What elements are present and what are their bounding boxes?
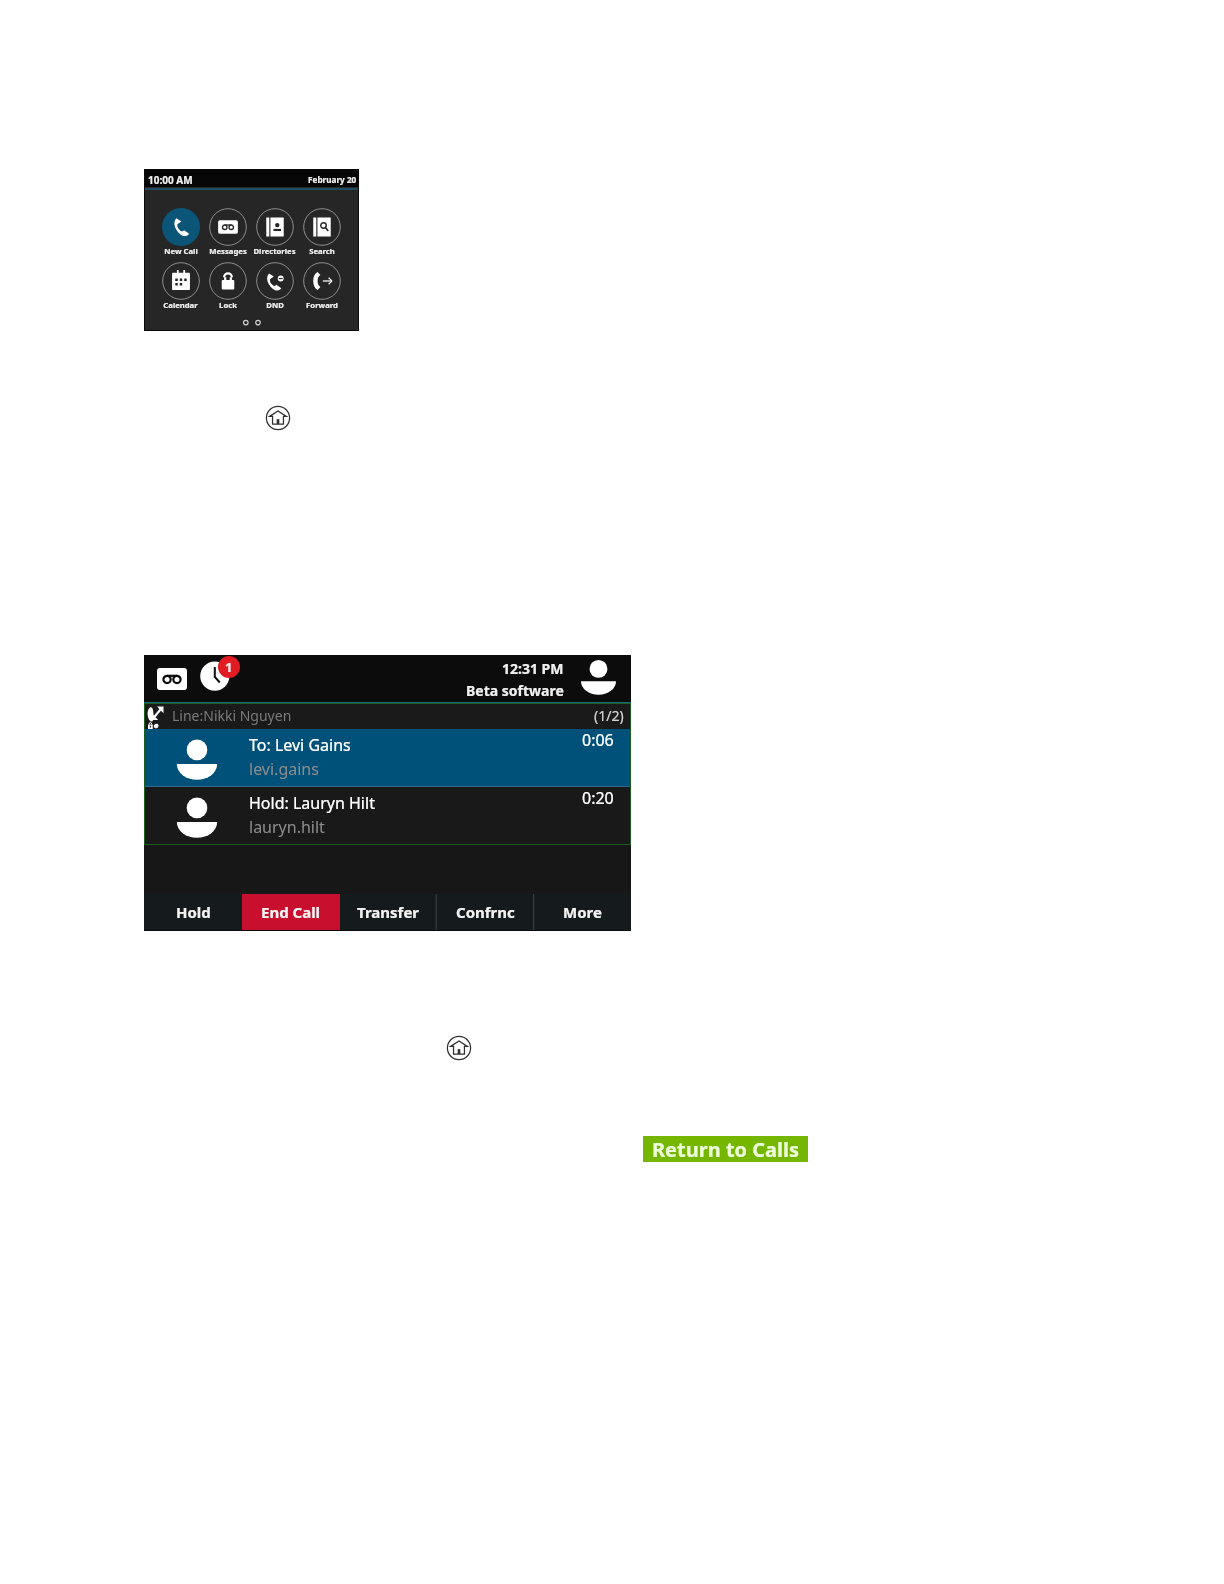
staticText: lauryn.hilt	[249, 816, 325, 838]
button[interactable]: More	[534, 894, 631, 931]
staticText: levi.gains	[249, 758, 319, 780]
staticText: Calendar	[163, 300, 198, 310]
button[interactable]: Forward	[298, 262, 345, 310]
staticText: (1/2)	[594, 706, 624, 725]
button[interactable]: New Call	[157, 208, 204, 256]
staticText: Transfer	[357, 902, 420, 922]
staticText: More	[563, 902, 602, 922]
button[interactable]: Messages	[204, 208, 251, 256]
button[interactable]: Lock	[204, 262, 251, 310]
button[interactable]: Recent calls	[200, 661, 230, 691]
staticText: To: Levi Gains	[249, 734, 351, 756]
button[interactable]: Directories	[251, 208, 298, 256]
staticText: Return to Calls	[652, 1136, 800, 1162]
button[interactable]: Return to Calls	[643, 1136, 808, 1162]
staticText: New Call	[164, 246, 198, 256]
staticText: 12:31 PM	[502, 659, 564, 678]
staticText: Hold	[176, 902, 211, 922]
button[interactable]: Confrnc	[437, 894, 534, 931]
staticText: 10:00 AM	[148, 173, 193, 187]
button[interactable]: Home	[446, 1035, 472, 1061]
staticText: Messages	[209, 246, 247, 256]
staticText: DND	[266, 300, 284, 310]
button[interactable]: Search	[298, 208, 345, 256]
button[interactable]: Hold	[144, 894, 242, 931]
button[interactable]: Voicemail	[157, 668, 187, 690]
staticText: Directories	[253, 246, 296, 256]
button[interactable]: Transfer	[340, 894, 437, 931]
button[interactable]: End Call	[242, 894, 340, 931]
staticText: Line:Nikki Nguyen	[172, 706, 292, 725]
staticText: Forward	[306, 300, 338, 310]
staticText: Lock	[219, 300, 237, 310]
staticText: Beta software	[466, 681, 564, 700]
staticText: 0:06	[582, 729, 614, 751]
staticText: Confrnc	[456, 902, 515, 922]
staticText: 0:20	[582, 787, 614, 809]
staticText: Search	[309, 246, 335, 256]
staticText: End Call	[261, 902, 321, 922]
button[interactable]: Calendar	[157, 262, 204, 310]
staticText: February 20	[308, 174, 357, 185]
staticText: 1	[225, 658, 233, 676]
button[interactable]: Home	[265, 405, 291, 431]
button[interactable]: DND	[251, 262, 298, 310]
button[interactable]: To: Levi Gains	[145, 729, 630, 786]
staticText: Hold: Lauryn Hilt	[249, 792, 375, 814]
button[interactable]: Hold: Lauryn Hilt	[145, 787, 630, 844]
